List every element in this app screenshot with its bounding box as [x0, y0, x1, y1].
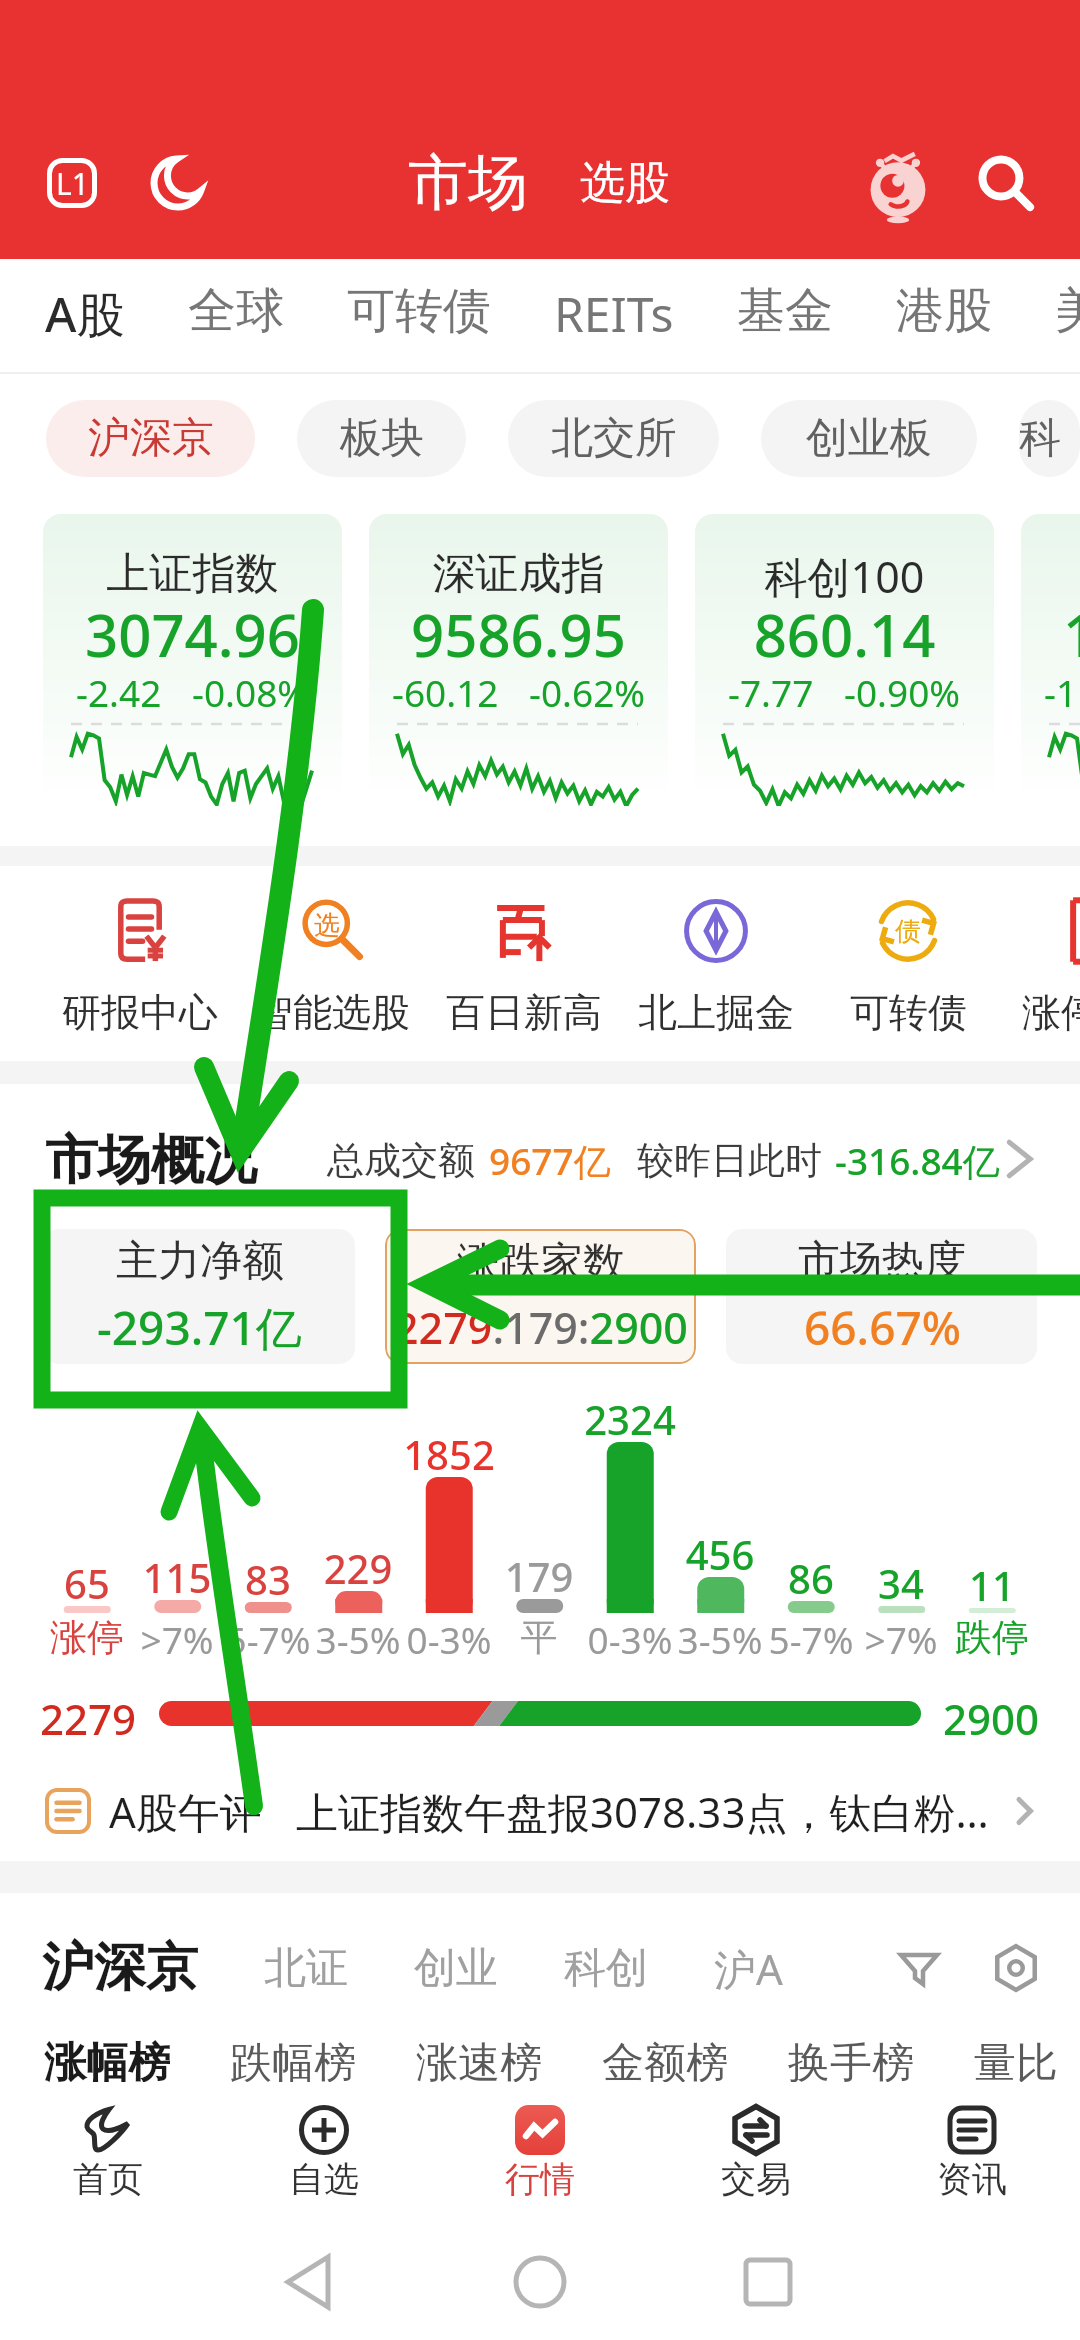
staticText: 5-7% [198, 1614, 338, 1664]
staticText: 涨幅榜 [44, 2037, 170, 2082]
button[interactable]: 资讯 [864, 2082, 1080, 2218]
staticText: 市场概况 [45, 1127, 257, 1194]
button[interactable]: 可转债 [347, 259, 491, 374]
staticText: -2.42 [76, 667, 162, 717]
staticText: 创业板 [806, 412, 932, 465]
staticText: 北上掘金 [638, 988, 794, 1037]
button[interactable]: 选股 [580, 155, 670, 212]
button[interactable]: AI assistant [870, 155, 926, 211]
button[interactable]: 科创板 [1019, 400, 1080, 477]
button[interactable]: Search [978, 155, 1034, 211]
staticText: 科创100 [695, 547, 994, 606]
button[interactable]: 量比榜 [974, 2037, 1080, 2082]
button[interactable]: 行情 [432, 2082, 648, 2218]
staticText: 上证指数午盘报3078.33点，钛白粉… [296, 1783, 989, 1839]
button[interactable]: 美股 [1055, 259, 1080, 374]
button[interactable]: 交易 [648, 2082, 864, 2218]
button[interactable]: 基金 [737, 259, 833, 374]
staticText: 深证成指 [369, 547, 668, 601]
button[interactable]: 上证指数 [43, 514, 342, 806]
staticText: REITs [554, 281, 674, 346]
staticText: 全球 [188, 281, 284, 341]
staticText: 上证指数 [43, 547, 342, 601]
staticText: 市场热度 [798, 1235, 966, 1288]
button[interactable]: 换手榜 [788, 2037, 974, 2082]
staticText: 3074.96 [43, 595, 342, 674]
staticText: 5-7% [741, 1614, 881, 1664]
staticText: -0.90% [844, 667, 961, 717]
staticText: 百日新高 [446, 988, 602, 1037]
staticText: >7% [831, 1614, 971, 1664]
staticText: -0.62% [529, 667, 646, 717]
button[interactable]: Night mode [150, 155, 206, 211]
staticText: 研报中心 [62, 988, 218, 1037]
staticText: 9677亿 [489, 1135, 611, 1186]
staticText: 9586.95 [369, 595, 668, 674]
button[interactable]: 市场 [408, 145, 528, 221]
button[interactable]: 首页 [0, 2082, 216, 2218]
button[interactable]: 涨幅榜 [44, 2037, 230, 2082]
button[interactable]: A股午评 [0, 1783, 1080, 1839]
staticText: 美股 [1055, 281, 1080, 341]
staticText: 11 [922, 1558, 1062, 1612]
staticText: 量比榜 [974, 2037, 1080, 2082]
staticText: 首页 [73, 2157, 143, 2201]
staticText: 债 [895, 915, 921, 948]
button[interactable]: 港股 [896, 259, 992, 374]
staticText: 平 [469, 1614, 609, 1661]
button[interactable]: 金额榜 [602, 2037, 788, 2082]
button[interactable]: 百日新高 [428, 866, 620, 1061]
staticText: 涨停复盘 [1022, 988, 1080, 1037]
staticText: 860.14 [695, 595, 994, 674]
button[interactable]: 研报中心 [44, 866, 236, 1061]
button[interactable]: 主力净额 [43, 1229, 355, 1364]
button[interactable]: REITs [554, 259, 674, 374]
staticText: 跌停 [922, 1614, 1062, 1661]
staticText: 3-5% [288, 1614, 428, 1664]
button[interactable]: 科创100 [695, 514, 994, 806]
staticText: 1852 [379, 1427, 519, 1481]
staticText: 涨跌家数 [457, 1237, 625, 1290]
button[interactable]: 北交所 [508, 400, 719, 477]
button[interactable]: A股 [45, 259, 125, 374]
staticText: 市场 [408, 145, 528, 221]
staticText: 可转债 [850, 988, 967, 1037]
staticText: 涨停 [17, 1614, 157, 1661]
button[interactable]: 深证成指 [369, 514, 668, 806]
staticText: 主力净额 [116, 1235, 284, 1288]
staticText: 2279:179:2900 [394, 1298, 688, 1357]
staticText: 1099.62 [1021, 595, 1080, 674]
button[interactable]: 涨速榜 [416, 2037, 602, 2082]
button[interactable]: 全球 [188, 259, 284, 374]
button[interactable]: 选 [236, 866, 428, 1061]
button[interactable]: 沪深京 [46, 400, 255, 477]
button[interactable]: 自选 [216, 2082, 432, 2218]
staticText: A股 [45, 281, 125, 347]
button[interactable]: Filter [894, 1943, 944, 1993]
staticText: -293.71亿 [97, 1296, 302, 1359]
button[interactable]: L1 quote level [47, 158, 97, 208]
staticText: 456 [650, 1527, 790, 1581]
button[interactable]: 涨跌家数 [385, 1229, 696, 1364]
button[interactable]: 北证50 [1021, 514, 1080, 806]
button[interactable]: 市场热度 [726, 1229, 1037, 1364]
staticText: 2324 [560, 1392, 700, 1446]
staticText: 智能选股 [254, 988, 410, 1037]
staticText: 229 [288, 1541, 428, 1595]
staticText: 2279 [40, 1690, 137, 1736]
staticText: 66.67% [804, 1296, 961, 1359]
button[interactable]: 创业板 [761, 400, 977, 477]
staticText: -60.12 [392, 667, 499, 717]
staticText: 2900 [943, 1690, 1040, 1736]
button[interactable]: 板块 [297, 400, 466, 477]
button[interactable]: 跌幅榜 [230, 2037, 416, 2082]
staticText: 3-5% [650, 1614, 790, 1664]
staticText: 较昨日此时 [637, 1137, 822, 1184]
button[interactable]: 涨 [1004, 866, 1080, 1061]
button[interactable]: Settings [990, 1942, 1042, 1994]
button[interactable]: 债 [812, 866, 1004, 1061]
staticText: 65 [17, 1556, 157, 1610]
staticText: -7.77 [728, 667, 814, 717]
staticText: 跌幅榜 [230, 2037, 356, 2082]
button[interactable]: 北上掘金 [620, 866, 812, 1061]
